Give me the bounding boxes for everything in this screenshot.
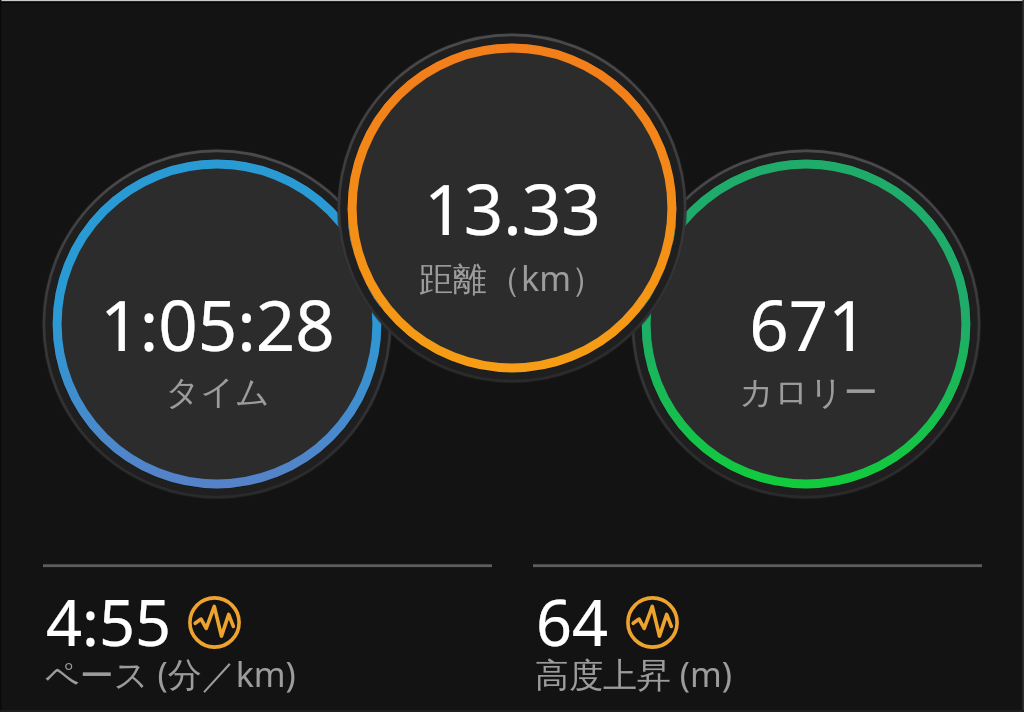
staticText: 高度上昇 (m) bbox=[535, 651, 733, 697]
staticText: 13.33 bbox=[424, 161, 601, 253]
other: Elevation gain bbox=[626, 596, 679, 649]
other: Pace bbox=[188, 596, 241, 649]
staticText: タイム bbox=[165, 371, 270, 414]
staticText: 距離（km） bbox=[419, 255, 605, 301]
button[interactable]: 64 bbox=[533, 556, 982, 708]
button[interactable]: 671 bbox=[630, 148, 982, 500]
staticText: 4:55 bbox=[46, 579, 171, 665]
staticText: カロリー bbox=[739, 371, 878, 414]
button[interactable]: 1:05:28 bbox=[41, 148, 393, 500]
staticText: 671 bbox=[749, 277, 868, 369]
button[interactable]: 13.33 bbox=[336, 32, 688, 384]
staticText: 64 bbox=[536, 579, 609, 665]
button[interactable]: 4:55 bbox=[43, 556, 492, 708]
staticText: 1:05:28 bbox=[100, 277, 335, 369]
staticText: ペース (分／km) bbox=[45, 651, 296, 697]
